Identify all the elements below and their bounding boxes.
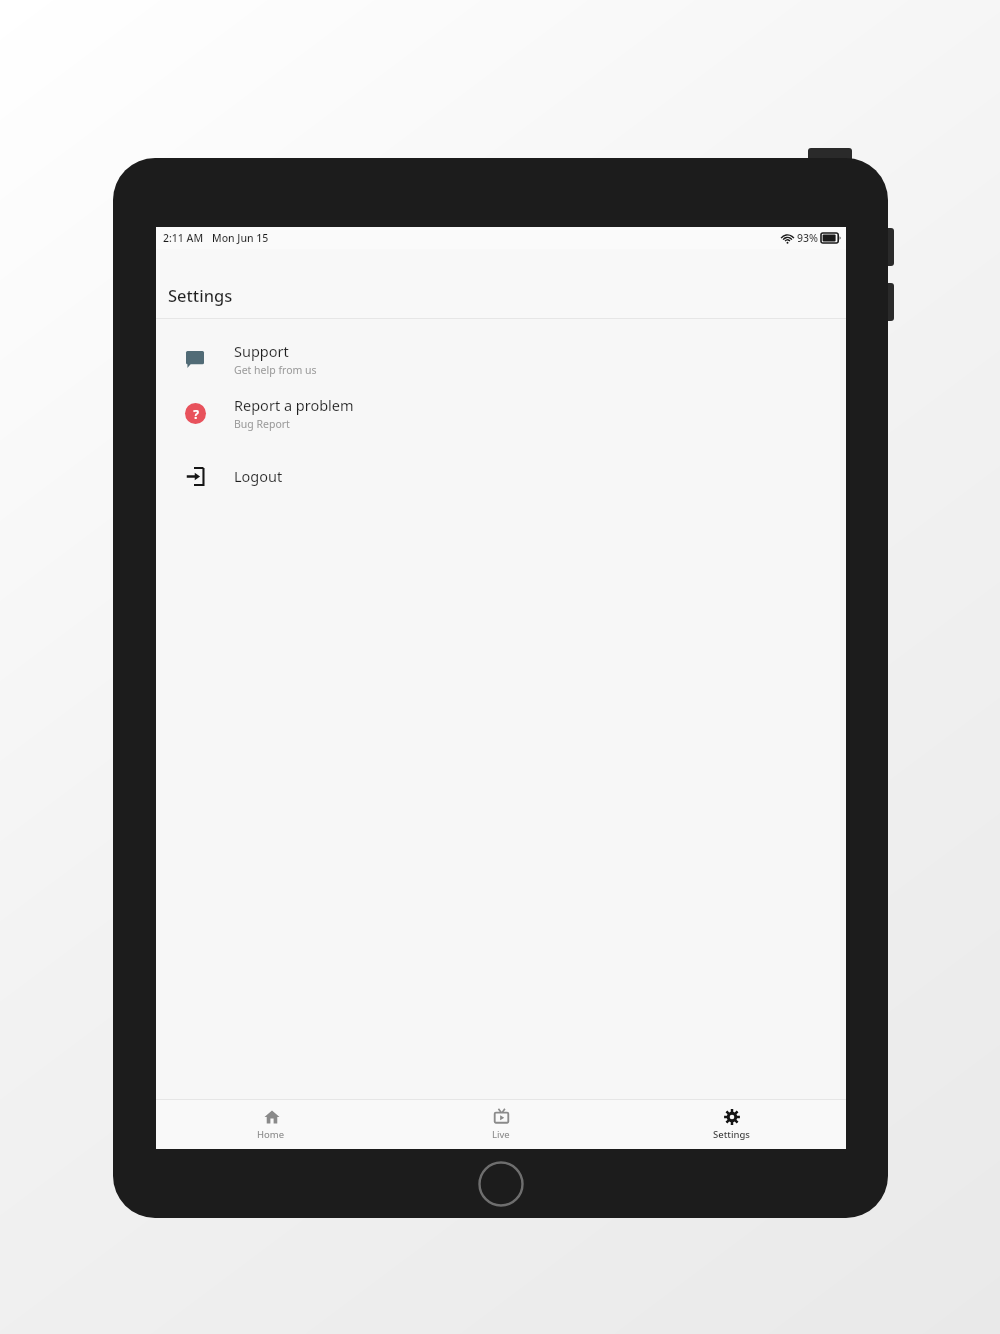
staticText: ?: [193, 406, 199, 422]
staticText: Settings: [713, 1128, 750, 1141]
button[interactable]: ?: [156, 386, 846, 440]
staticText: Support: [234, 341, 289, 361]
staticText: Report a problem: [234, 395, 354, 415]
staticText: Get help from us: [234, 363, 317, 377]
button[interactable]: Support: [156, 332, 846, 386]
staticText: Mon Jun 15: [212, 231, 269, 245]
staticText: Home: [257, 1128, 285, 1141]
button[interactable]: Home: [156, 1100, 386, 1149]
button[interactable]: Settings: [616, 1100, 846, 1149]
staticText: Logout: [234, 466, 283, 486]
staticText: Live: [492, 1128, 510, 1141]
button[interactable]: Live: [386, 1100, 616, 1149]
staticText: 93%: [797, 231, 818, 245]
button[interactable]: Logout: [156, 452, 846, 500]
staticText: 2:11 AM: [163, 231, 204, 245]
staticText: Bug Report: [234, 417, 290, 431]
other: Home button: [478, 1161, 524, 1207]
staticText: Settings: [168, 284, 233, 306]
